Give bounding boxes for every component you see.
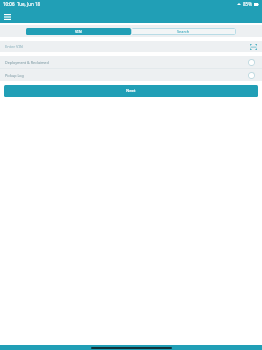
button[interactable]: Search	[131, 28, 236, 35]
staticText: 85%	[243, 1, 252, 7]
button[interactable]: Next	[4, 85, 258, 97]
button[interactable]: Deployment & Reclaimed	[0, 56, 262, 68]
staticText: Pickup Log	[5, 73, 24, 78]
button[interactable]: Open navigation menu	[2, 11, 13, 22]
button[interactable]: VIN	[26, 28, 131, 35]
staticText: Enter VIN	[5, 44, 23, 49]
staticText: 10:06	[3, 1, 15, 7]
staticText: Search	[177, 29, 190, 34]
button[interactable]: Scan barcode	[249, 42, 258, 51]
staticText: Tue, Jun 18	[17, 1, 41, 7]
staticText: Deployment & Reclaimed	[5, 60, 49, 65]
staticText: Next	[126, 88, 136, 94]
staticText: VIN	[75, 29, 82, 34]
button[interactable]: Pickup Log	[0, 69, 262, 81]
